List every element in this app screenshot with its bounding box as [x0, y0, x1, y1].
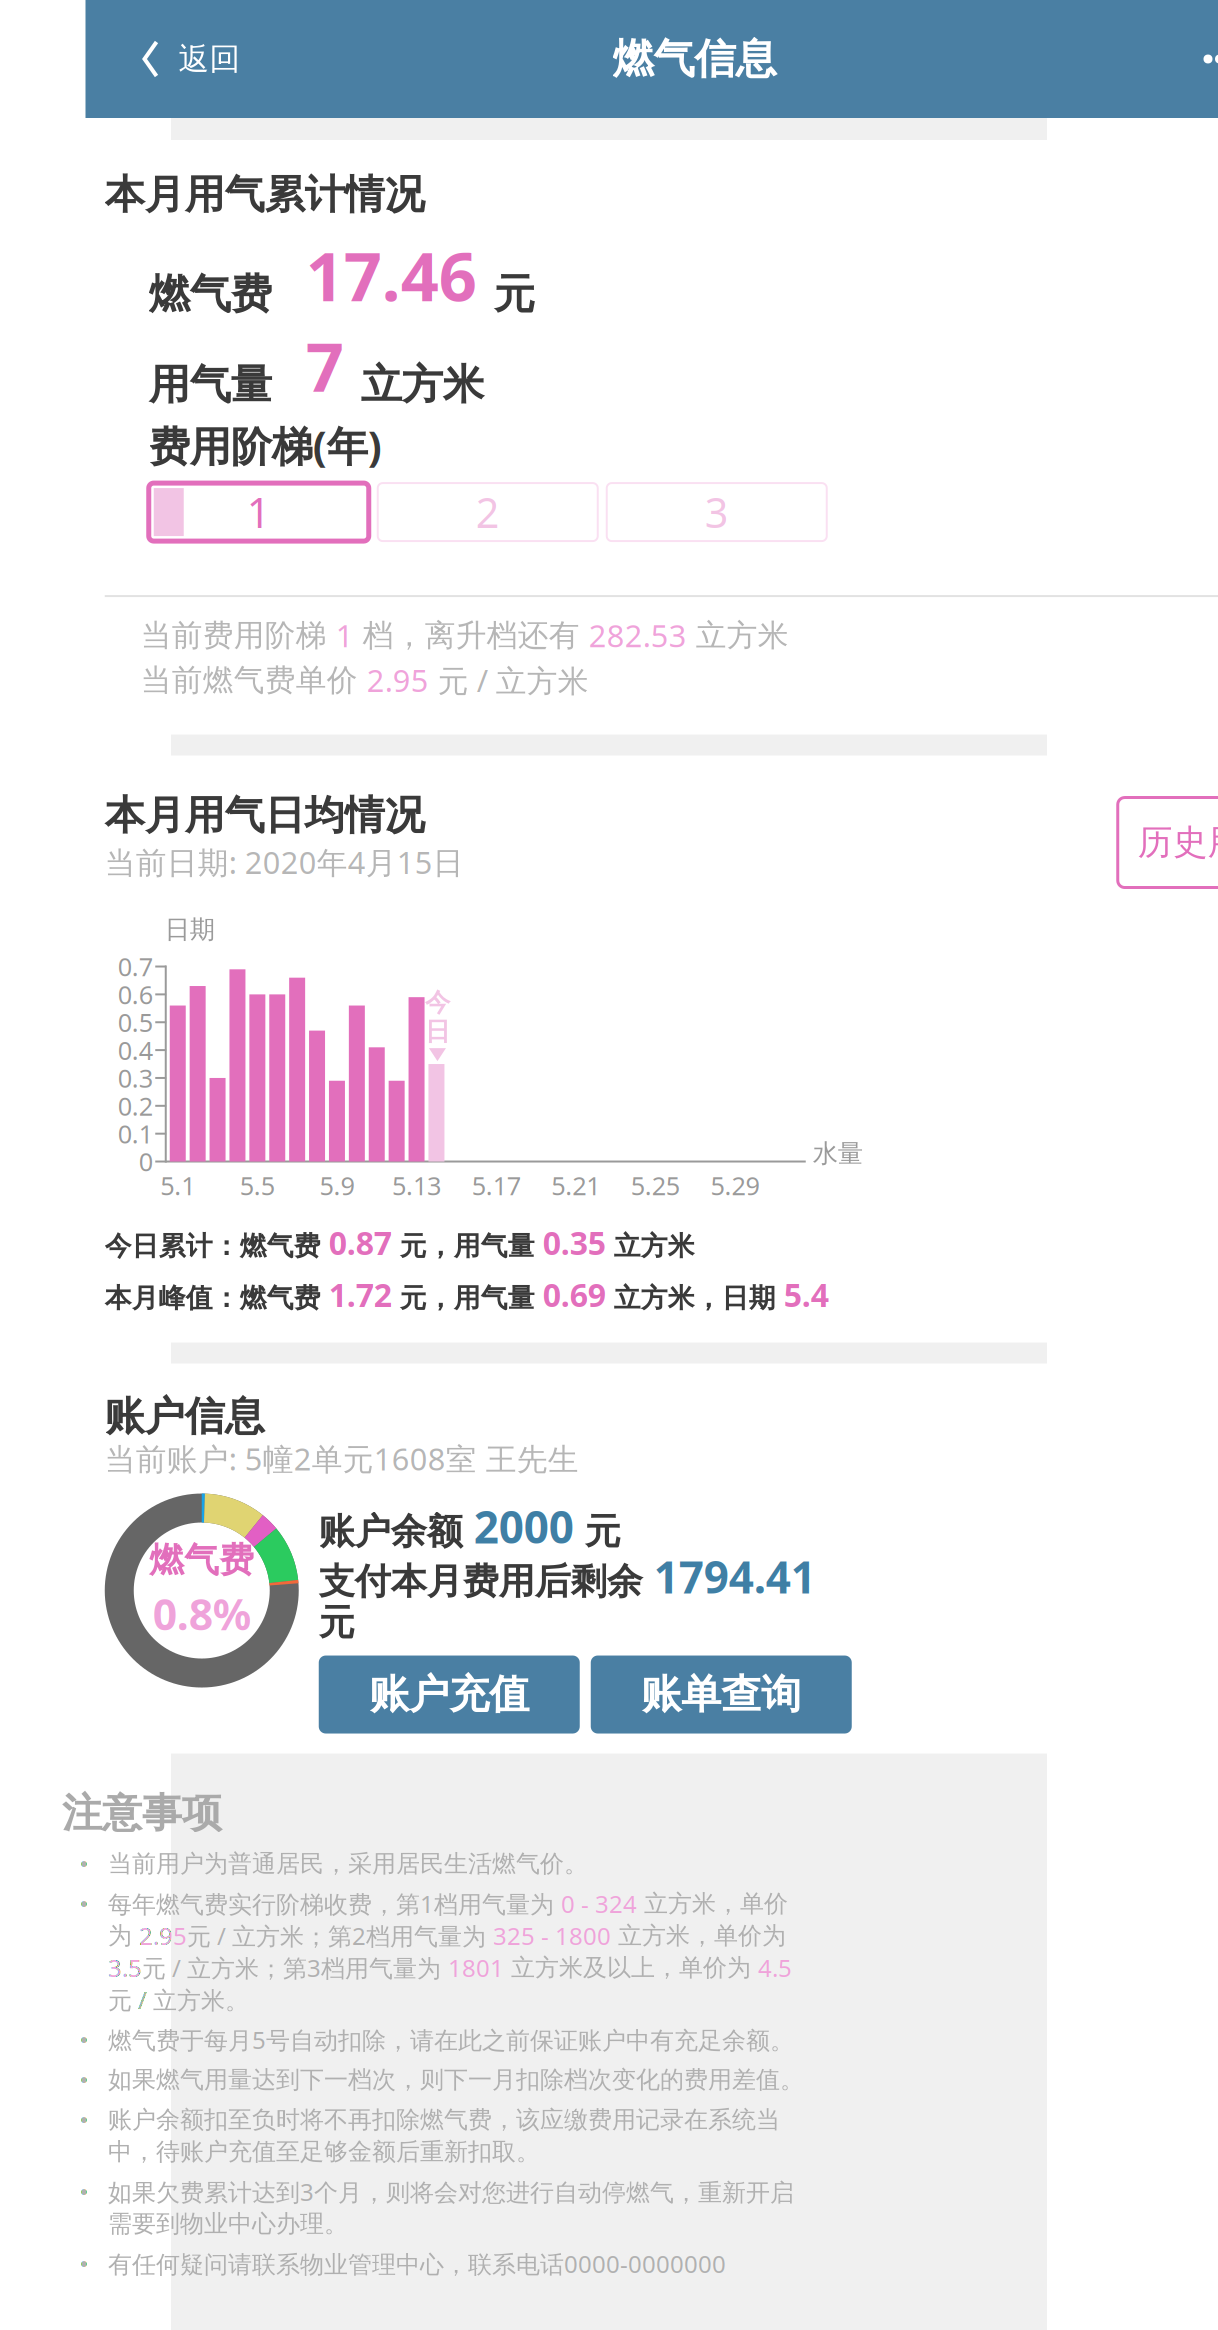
staticText: 5.1: [160, 1169, 195, 1202]
staticText: 当前日期: 2020年4月15日: [105, 842, 464, 882]
staticText: 元，用气量: [392, 1230, 543, 1262]
staticText: 立方米: [361, 359, 484, 410]
staticText: •: [79, 2064, 88, 2096]
staticText: 282.53: [589, 615, 687, 656]
staticText: •: [79, 1888, 88, 1920]
staticText: 支付本月费用后剩余: [319, 1559, 654, 1604]
staticText: 返回: [178, 40, 240, 78]
staticText: 元 / 立方米。: [108, 1984, 249, 2016]
staticText: •: [79, 2176, 88, 2208]
staticText: 1: [336, 615, 354, 656]
staticText: 5.21: [551, 1169, 600, 1202]
staticText: 立方米: [606, 1230, 695, 1262]
staticText: 立方米，单价为: [611, 1921, 786, 1950]
staticText: 本月用气累计情况: [105, 170, 425, 219]
staticText: 元: [574, 1509, 621, 1554]
staticText: 2: [476, 485, 500, 539]
staticText: 2000: [474, 1497, 574, 1556]
staticText: 7: [272, 322, 361, 410]
button[interactable]: 返回: [85, 0, 262, 118]
staticText: 费用阶梯(年): [149, 418, 382, 473]
staticText: 4.5: [758, 1952, 792, 1984]
staticText: 0.5: [118, 1005, 153, 1039]
staticText: 今: [425, 987, 450, 1018]
button[interactable]: More options: [1181, 0, 1218, 118]
staticText: 日: [425, 1016, 450, 1047]
staticText: 账户余额: [319, 1509, 474, 1554]
staticText: 燃气费: [149, 269, 272, 320]
staticText: 账单查询: [641, 1670, 801, 1719]
staticText: 1794.41: [654, 1547, 816, 1606]
staticText: 立方米，日期: [606, 1282, 784, 1314]
staticText: 0.3: [118, 1061, 153, 1095]
staticText: 17.46: [272, 231, 494, 320]
staticText: 5.9: [319, 1169, 354, 1202]
staticText: 元: [319, 1600, 355, 1645]
staticText: 账户充值: [369, 1670, 529, 1719]
button[interactable]: 历史用气查询: [1118, 797, 1218, 887]
button[interactable]: 2: [378, 483, 598, 541]
button[interactable]: 账户充值: [319, 1655, 580, 1733]
staticText: 0.4: [118, 1033, 153, 1067]
staticText: 当前费用阶梯: [141, 617, 336, 654]
staticText: 5.13: [392, 1169, 441, 1202]
staticText: •: [79, 2024, 88, 2056]
button[interactable]: 账单查询: [591, 1655, 852, 1733]
button[interactable]: 3: [607, 483, 827, 541]
staticText: 5.29: [710, 1169, 759, 1202]
staticText: 今日累计：燃气费: [105, 1230, 329, 1262]
staticText: 当前用户为普通居民，采用居民生活燃气价。: [108, 1849, 588, 1878]
staticText: 5.25: [631, 1169, 680, 1202]
staticText: 0.1: [118, 1117, 153, 1150]
staticText: 5.4: [784, 1273, 829, 1316]
staticText: 有任何疑问请联系物业管理中心，联系电话0000-0000000: [108, 2248, 726, 2280]
staticText: 2.95: [367, 660, 429, 700]
staticText: 0.35: [543, 1221, 606, 1264]
staticText: 当前账户: 5幢2单元1608室 王先生: [105, 1438, 579, 1479]
staticText: 元，用气量: [392, 1282, 543, 1314]
staticText: 325 - 1800: [493, 1920, 611, 1952]
staticText: 燃气信息: [612, 34, 776, 84]
staticText: •: [79, 2104, 88, 2136]
staticText: 立方米及以上，单价为: [504, 1953, 758, 1982]
button[interactable]: 1: [149, 483, 369, 541]
staticText: 档，离升档还有: [354, 617, 589, 654]
staticText: 5.17: [472, 1169, 521, 1202]
staticText: 0.6: [118, 978, 153, 1011]
staticText: 如果燃气用量达到下一档次，则下一月扣除档次变化的费用差值。: [108, 2065, 804, 2094]
staticText: 元 / 立方米；第2档用气量为: [187, 1920, 493, 1952]
staticText: 用气量: [149, 359, 272, 410]
staticText: 元: [494, 269, 535, 320]
staticText: 每年燃气费实行阶梯收费，第1档用气量为: [108, 1888, 561, 1920]
staticText: 元 / 立方米: [429, 660, 589, 700]
staticText: 需要到物业中心办理。: [108, 2209, 348, 2238]
staticText: 1.72: [329, 1273, 392, 1316]
staticText: •: [79, 1848, 88, 1880]
staticText: 为: [108, 1921, 139, 1950]
staticText: 如果欠费累计达到3个月，则将会对您进行自动停燃气，重新开启: [108, 2176, 794, 2208]
staticText: 0.2: [118, 1089, 153, 1123]
staticText: 立方米: [687, 617, 789, 654]
staticText: 当前燃气费单价: [141, 661, 367, 699]
staticText: 0: [139, 1145, 153, 1178]
staticText: 0.8%: [153, 1585, 251, 1642]
staticText: 中，待账户充值至足够金额后重新扣取。: [108, 2137, 540, 2166]
staticText: 2.95: [139, 1920, 187, 1952]
staticText: 本月用气日均情况: [105, 791, 425, 840]
staticText: 账户余额扣至负时将不再扣除燃气费，该应缴费用记录在系统当: [108, 2105, 780, 2134]
staticText: 5.5: [240, 1169, 275, 1202]
staticText: 本月峰值：燃气费: [105, 1282, 329, 1314]
staticText: 3.5: [108, 1952, 142, 1984]
staticText: 1: [247, 485, 271, 539]
staticText: 水量: [813, 1138, 863, 1169]
staticText: 0.87: [329, 1221, 392, 1264]
staticText: 0.7: [118, 950, 153, 983]
staticText: 立方米，单价: [637, 1889, 788, 1918]
staticText: 日期: [165, 914, 215, 945]
staticText: 3: [705, 485, 729, 539]
staticText: 注意事项: [62, 1788, 222, 1838]
staticText: •: [79, 2248, 88, 2280]
staticText: 0 - 324: [561, 1888, 637, 1920]
staticText: 元 / 立方米；第3档用气量为: [142, 1952, 448, 1984]
staticText: 燃气费: [149, 1539, 254, 1581]
